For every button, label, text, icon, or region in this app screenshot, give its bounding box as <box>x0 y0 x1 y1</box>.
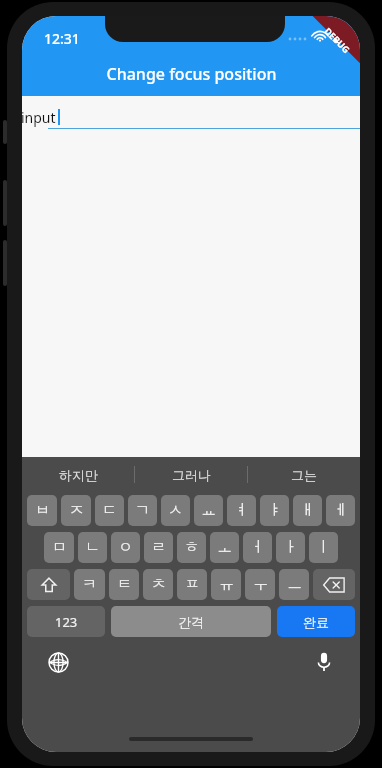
button[interactable]: ㅡ <box>279 569 309 600</box>
staticText: ㄷ <box>102 501 117 520</box>
staticText: ㄴ <box>85 538 100 557</box>
staticText: 12:31 <box>44 29 80 48</box>
button[interactable]: ㅎ <box>177 532 206 563</box>
button[interactable]: 123 <box>27 606 105 637</box>
button[interactable]: ㅅ <box>161 495 190 526</box>
staticText: ㅊ <box>151 575 166 594</box>
button[interactable]: ㄴ <box>78 532 107 563</box>
button[interactable]: ㄹ <box>144 532 173 563</box>
staticText: 123 <box>55 613 78 631</box>
staticText: ㅕ <box>234 501 249 520</box>
button[interactable]: Change language <box>42 646 74 678</box>
staticText: 간격 <box>178 614 204 630</box>
button[interactable]: ㅈ <box>61 495 91 526</box>
staticText: ㅗ <box>217 538 232 557</box>
button[interactable]: ㅁ <box>44 532 74 563</box>
button[interactable]: 하지만 <box>22 457 134 492</box>
button[interactable]: ㅂ <box>27 495 57 526</box>
staticText: ㅣ <box>316 538 331 557</box>
staticText: ㅂ <box>35 501 50 520</box>
button[interactable]: 그는 <box>248 457 360 492</box>
button[interactable]: 간격 <box>111 606 271 637</box>
button[interactable]: ㅗ <box>210 532 239 563</box>
staticText: 그는 <box>291 467 317 483</box>
staticText: ㅐ <box>300 501 315 520</box>
staticText: ㅁ <box>52 538 67 557</box>
staticText: DEBUG <box>322 25 353 55</box>
staticText: ㄱ <box>135 501 150 520</box>
staticText: ㅋ <box>82 575 97 594</box>
staticText: 하지만 <box>59 467 98 483</box>
staticText: 완료 <box>303 614 329 630</box>
button[interactable]: 완료 <box>277 606 355 637</box>
button[interactable]: ㅣ <box>309 532 338 563</box>
button[interactable]: ㅇ <box>111 532 140 563</box>
button[interactable]: ㅠ <box>211 569 241 600</box>
button[interactable]: Shift <box>27 569 70 600</box>
button[interactable]: ㅔ <box>326 495 355 526</box>
staticText: ㅑ <box>267 501 282 520</box>
button[interactable]: ㅕ <box>227 495 256 526</box>
button[interactable]: ㅑ <box>260 495 289 526</box>
staticText: ㅛ <box>201 501 216 520</box>
button[interactable]: Backspace <box>313 569 355 600</box>
staticText: ㅎ <box>184 538 199 557</box>
staticText: ㅓ <box>250 538 265 557</box>
button[interactable]: input <box>22 96 360 138</box>
staticText: Change focus position <box>106 63 277 85</box>
button[interactable]: ㅍ <box>177 569 207 600</box>
staticText: ㅍ <box>185 575 200 594</box>
button[interactable]: ㅜ <box>245 569 275 600</box>
staticText: ㅅ <box>168 501 183 520</box>
button[interactable]: 그러나 <box>135 457 247 492</box>
button[interactable]: ㅊ <box>143 569 173 600</box>
button[interactable]: ㅐ <box>293 495 322 526</box>
staticText: ㅈ <box>69 501 84 520</box>
button[interactable]: ㄷ <box>95 495 124 526</box>
button[interactable]: ㄱ <box>128 495 157 526</box>
staticText: ㄹ <box>151 538 166 557</box>
staticText: ㅡ <box>287 575 302 594</box>
staticText: ㅌ <box>117 575 132 594</box>
staticText: ㅇ <box>118 538 133 557</box>
button[interactable]: ㅛ <box>194 495 223 526</box>
staticText: ㅔ <box>333 501 348 520</box>
button[interactable]: ㅋ <box>74 569 105 600</box>
button[interactable]: Voice input <box>308 646 340 678</box>
staticText: ㅠ <box>219 575 234 594</box>
staticText: input <box>22 108 56 127</box>
staticText: ㅜ <box>253 575 268 594</box>
button[interactable]: ㅓ <box>243 532 272 563</box>
button[interactable]: ㅌ <box>109 569 139 600</box>
staticText: 그러나 <box>172 467 211 483</box>
staticText: ㅏ <box>283 538 298 557</box>
button[interactable]: ㅏ <box>276 532 305 563</box>
